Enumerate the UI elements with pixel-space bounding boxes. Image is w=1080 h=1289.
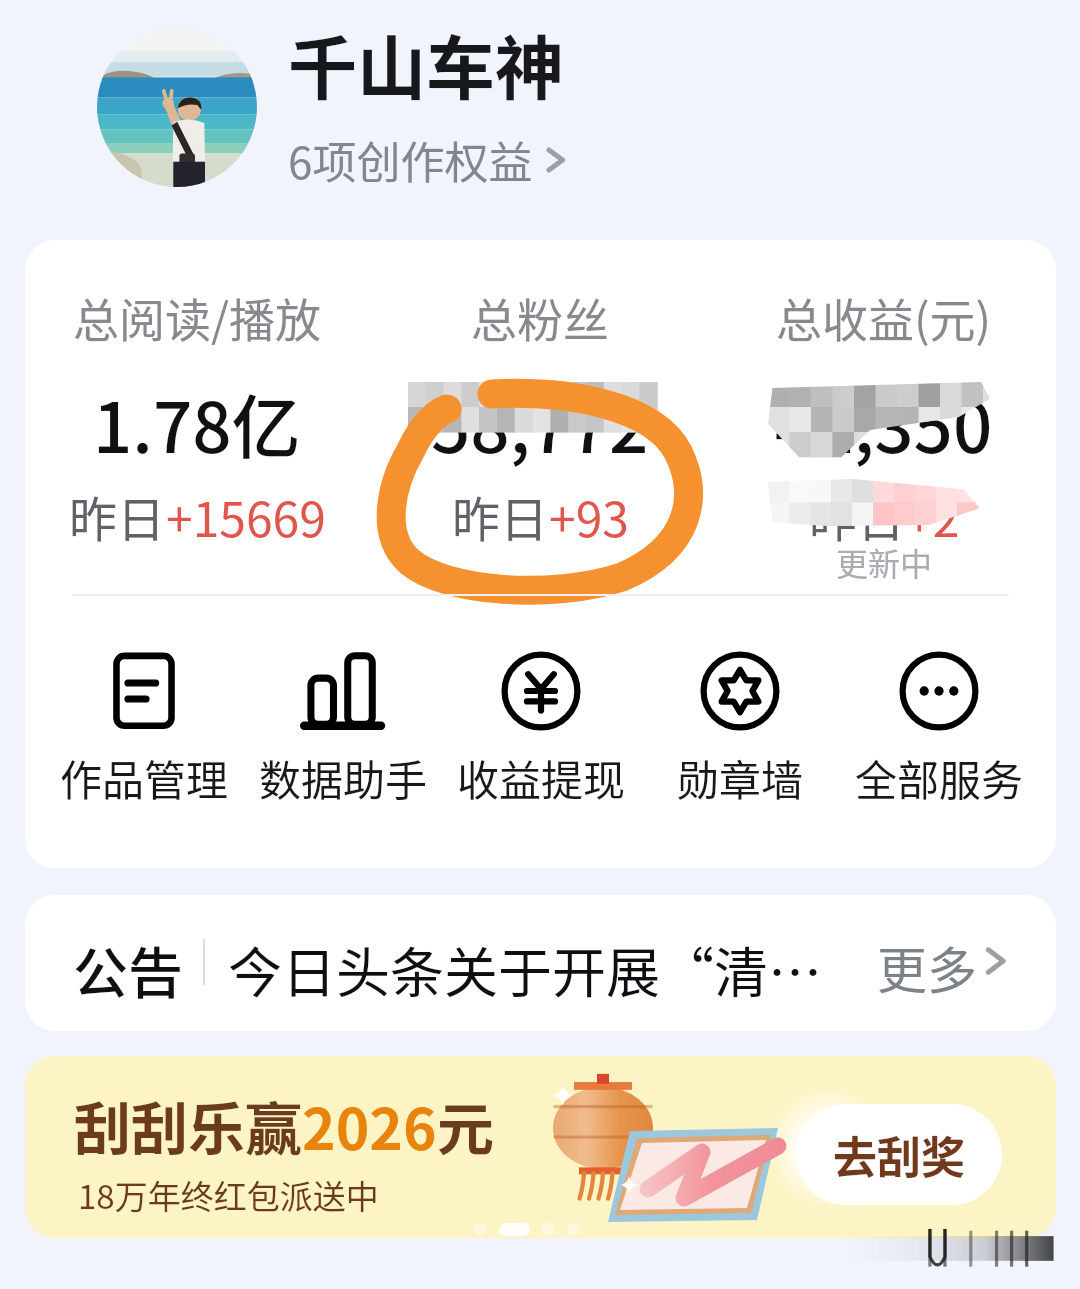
button[interactable]: 总阅读/播放	[37, 284, 357, 594]
other: 全部服务	[899, 651, 979, 731]
staticText: 昨日	[69, 481, 166, 551]
other: 数据助手	[303, 651, 383, 731]
staticText: 公告	[73, 929, 184, 1009]
staticText: 18万年终红包派送中	[78, 1171, 379, 1219]
button[interactable]: 全部服务	[839, 651, 1039, 808]
button[interactable]: 去刮奖	[796, 1104, 1002, 1205]
staticText: 勋章墙	[677, 747, 804, 808]
staticText: 2026	[302, 1084, 437, 1167]
staticText: 全部服务	[855, 747, 1024, 808]
staticText: 更多	[877, 931, 977, 1003]
staticText: 58,772	[431, 373, 649, 473]
button[interactable]: 千山车神	[288, 14, 564, 114]
staticText: 作品管理	[60, 747, 229, 808]
staticText: 刮刮乐赢	[74, 1084, 302, 1167]
staticText: 元	[437, 1084, 494, 1167]
staticText: 总收益(元)	[776, 284, 992, 351]
button[interactable]: 数据助手	[243, 651, 443, 808]
staticText: 千山车神	[288, 14, 564, 114]
staticText: +93	[549, 481, 629, 551]
staticText: +2	[906, 481, 960, 551]
button[interactable]: 总收益(元)	[724, 284, 1044, 594]
staticText: 更新中	[836, 539, 933, 582]
button[interactable]: 勋章墙	[640, 651, 840, 808]
button[interactable]: 作品管理	[44, 651, 244, 808]
other: 作品管理	[104, 651, 184, 731]
staticText: +15669	[166, 481, 326, 551]
button[interactable]: 总粉丝	[380, 284, 700, 594]
other: 收益提现	[501, 651, 581, 731]
staticText: 数据助手	[259, 747, 428, 808]
staticText: 1.78亿	[93, 373, 301, 473]
staticText: 昨日	[809, 481, 906, 551]
staticText: 今日头条关于开展“清…	[228, 930, 822, 1008]
staticText: 6项创作权益	[288, 128, 533, 192]
button[interactable]: 收益提现	[441, 651, 641, 808]
button[interactable]: Profile photo	[97, 27, 257, 187]
staticText: 去刮奖	[833, 1123, 965, 1187]
other: 勋章墙	[700, 651, 780, 731]
staticText: 42,350	[775, 373, 993, 473]
staticText: 总阅读/播放	[73, 284, 322, 351]
button[interactable]: 6项创作权益	[288, 124, 567, 196]
staticText: 总粉丝	[471, 284, 609, 351]
staticText: 昨日	[452, 481, 549, 551]
button[interactable]: 公告	[25, 895, 1056, 1031]
staticText: 收益提现	[457, 747, 626, 808]
button[interactable]: 刮刮乐赢	[25, 1056, 1056, 1238]
